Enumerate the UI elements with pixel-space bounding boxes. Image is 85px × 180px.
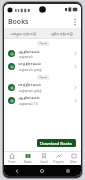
button[interactable]: Recents — [55, 165, 81, 176]
staticText: அதிகாரம் 10 — [18, 101, 38, 106]
button[interactable]: Progress — [51, 152, 66, 165]
staticText: தொகு — [39, 42, 47, 45]
staticText: Progress — [53, 160, 64, 164]
button[interactable]: தொகு — [39, 76, 47, 79]
staticText: புதிய ஏற்பாடு — [50, 31, 73, 36]
button[interactable]: Home — [29, 165, 55, 176]
button[interactable]: More options — [69, 16, 81, 28]
staticText: அதிகாரம் தமிழ் — [18, 88, 42, 93]
staticText: Home — [8, 160, 16, 164]
button[interactable]: ஆதியாகமம் — [4, 47, 81, 60]
staticText: பழைய ஏற்பாடு — [10, 31, 36, 36]
staticText: More — [70, 160, 77, 164]
button[interactable]: யாத்திராகமம் — [4, 60, 81, 73]
staticText: தொகு — [39, 76, 47, 79]
button[interactable]: யாத்திராகமம் — [4, 81, 81, 94]
button[interactable]: பழைய ஏற்பாடு — [4, 28, 42, 38]
staticText: Download Books — [40, 141, 73, 146]
button[interactable]: Saved — [36, 152, 51, 165]
staticText: யாத்திராகமம் — [18, 83, 41, 87]
button[interactable]: ஆதியாகமம் — [4, 94, 81, 107]
staticText: Saved — [40, 160, 48, 164]
button[interactable]: More — [66, 152, 81, 165]
staticText: Books — [8, 17, 29, 27]
button[interactable]: தொகு — [39, 42, 47, 45]
staticText: ஆதியாகமம் — [18, 50, 40, 54]
button[interactable]: Download Books — [37, 139, 76, 147]
button[interactable]: புதிய ஏற்பாடு — [42, 28, 81, 38]
staticText: Books — [24, 160, 32, 164]
staticText: அதிகாரம் — [18, 55, 33, 58]
staticText: யாத்திராகமம் — [18, 62, 41, 66]
button[interactable]: Back — [4, 165, 29, 176]
button[interactable]: Books — [20, 152, 36, 165]
button[interactable]: Home — [4, 152, 20, 165]
staticText: அதிகாரம் தமிழ் — [18, 67, 42, 72]
staticText: ஆதியாகமம் — [18, 96, 40, 100]
